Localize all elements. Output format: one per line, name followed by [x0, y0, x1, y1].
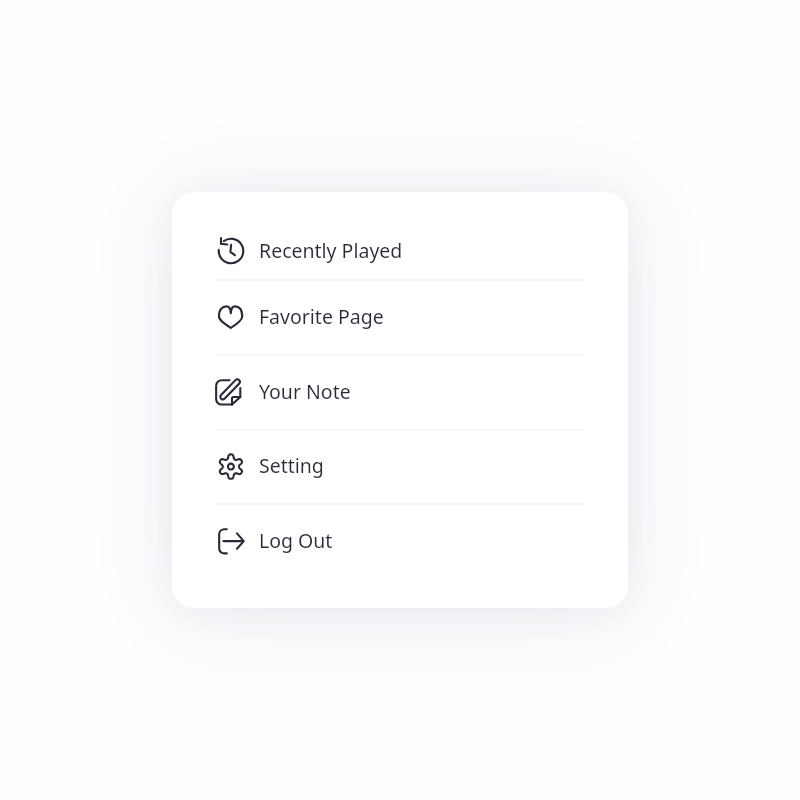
button[interactable]: Setting — [172, 430, 628, 503]
other: Favorite Page — [217, 303, 247, 331]
other: Setting — [217, 452, 247, 480]
button[interactable]: Recently Played — [172, 192, 628, 279]
staticText: Your Note — [259, 378, 351, 405]
staticText: Log Out — [259, 527, 333, 554]
other: Log Out — [217, 527, 247, 555]
other: Your Note — [216, 378, 246, 406]
staticText: Setting — [259, 452, 324, 479]
button[interactable]: Your Note — [172, 355, 628, 428]
other: Recently Played — [217, 237, 247, 265]
staticText: Favorite Page — [259, 303, 384, 330]
staticText: Recently Played — [259, 237, 403, 264]
button[interactable]: Favorite Page — [172, 281, 628, 354]
button[interactable]: Log Out — [172, 505, 628, 608]
